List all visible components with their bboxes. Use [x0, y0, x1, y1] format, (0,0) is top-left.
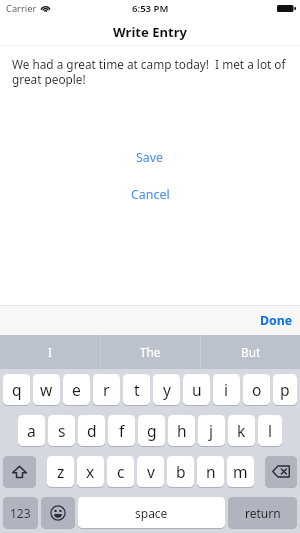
staticText: t: [134, 379, 140, 400]
staticText: j: [209, 420, 214, 441]
staticText: z: [57, 461, 65, 482]
button[interactable]: d: [78, 415, 105, 446]
button[interactable]: return: [228, 497, 297, 528]
staticText: g: [147, 420, 157, 441]
staticText: c: [117, 461, 125, 482]
button[interactable]: l: [258, 415, 282, 446]
button[interactable]: Done: [251, 307, 300, 334]
staticText: space: [135, 505, 168, 521]
staticText: e: [72, 379, 81, 400]
button[interactable]: z: [47, 456, 74, 487]
button[interactable]: v: [137, 456, 164, 487]
button[interactable]: e: [63, 374, 90, 405]
staticText: Write Entry: [113, 23, 188, 41]
button[interactable]: c: [107, 456, 134, 487]
staticText: l: [268, 420, 273, 441]
staticText: k: [237, 420, 246, 441]
button[interactable]: t: [123, 374, 150, 405]
button[interactable]: j: [198, 415, 225, 446]
staticText: Cancel: [131, 186, 170, 203]
staticText: n: [206, 461, 216, 482]
staticText: But: [241, 344, 261, 360]
button[interactable]: a: [18, 415, 45, 446]
button[interactable]: But: [201, 335, 300, 369]
button[interactable]: m: [227, 456, 254, 487]
staticText: o: [252, 379, 262, 400]
staticText: p: [280, 379, 290, 400]
staticText: u: [192, 379, 202, 400]
button[interactable]: g: [138, 415, 165, 446]
staticText: h: [177, 420, 187, 441]
button[interactable]: Emoji: [41, 497, 75, 528]
staticText: return: [245, 505, 281, 521]
button[interactable]: o: [243, 374, 270, 405]
button[interactable]: x: [77, 456, 104, 487]
staticText: We had a great time at camp today! I met…: [12, 56, 288, 87]
button[interactable]: n: [197, 456, 224, 487]
staticText: Save: [136, 149, 164, 166]
button[interactable]: b: [167, 456, 194, 487]
staticText: Done: [260, 312, 293, 329]
button[interactable]: k: [228, 415, 255, 446]
button[interactable]: h: [168, 415, 195, 446]
staticText: q: [12, 379, 22, 400]
staticText: 123: [10, 505, 31, 521]
staticText: Carrier: [6, 2, 37, 15]
staticText: a: [27, 420, 36, 441]
button[interactable]: f: [108, 415, 135, 446]
button[interactable]: Save: [120, 147, 180, 168]
button[interactable]: Numbers: [3, 497, 38, 528]
button[interactable]: p: [273, 374, 297, 405]
staticText: x: [86, 461, 95, 482]
staticText: v: [147, 461, 155, 482]
button[interactable]: q: [3, 374, 30, 405]
staticText: r: [103, 379, 110, 400]
button[interactable]: y: [153, 374, 180, 405]
button[interactable]: I: [0, 335, 100, 369]
button[interactable]: Cancel: [115, 184, 186, 205]
button[interactable]: Backspace: [265, 456, 297, 487]
button[interactable]: r: [93, 374, 120, 405]
button[interactable]: u: [183, 374, 210, 405]
button[interactable]: s: [48, 415, 75, 446]
staticText: y: [163, 379, 171, 400]
button[interactable]: The: [101, 335, 200, 369]
staticText: b: [176, 461, 186, 482]
staticText: d: [87, 420, 97, 441]
staticText: i: [224, 379, 229, 400]
button[interactable]: w: [33, 374, 60, 405]
staticText: m: [233, 461, 248, 482]
staticText: 6:53 PM: [132, 2, 169, 15]
staticText: I: [48, 344, 52, 360]
button[interactable]: space: [78, 497, 225, 528]
staticText: s: [58, 420, 66, 441]
staticText: w: [40, 379, 53, 400]
button[interactable]: Shift: [3, 456, 36, 487]
staticText: f: [119, 420, 125, 441]
button[interactable]: i: [213, 374, 240, 405]
staticText: The: [140, 344, 161, 360]
